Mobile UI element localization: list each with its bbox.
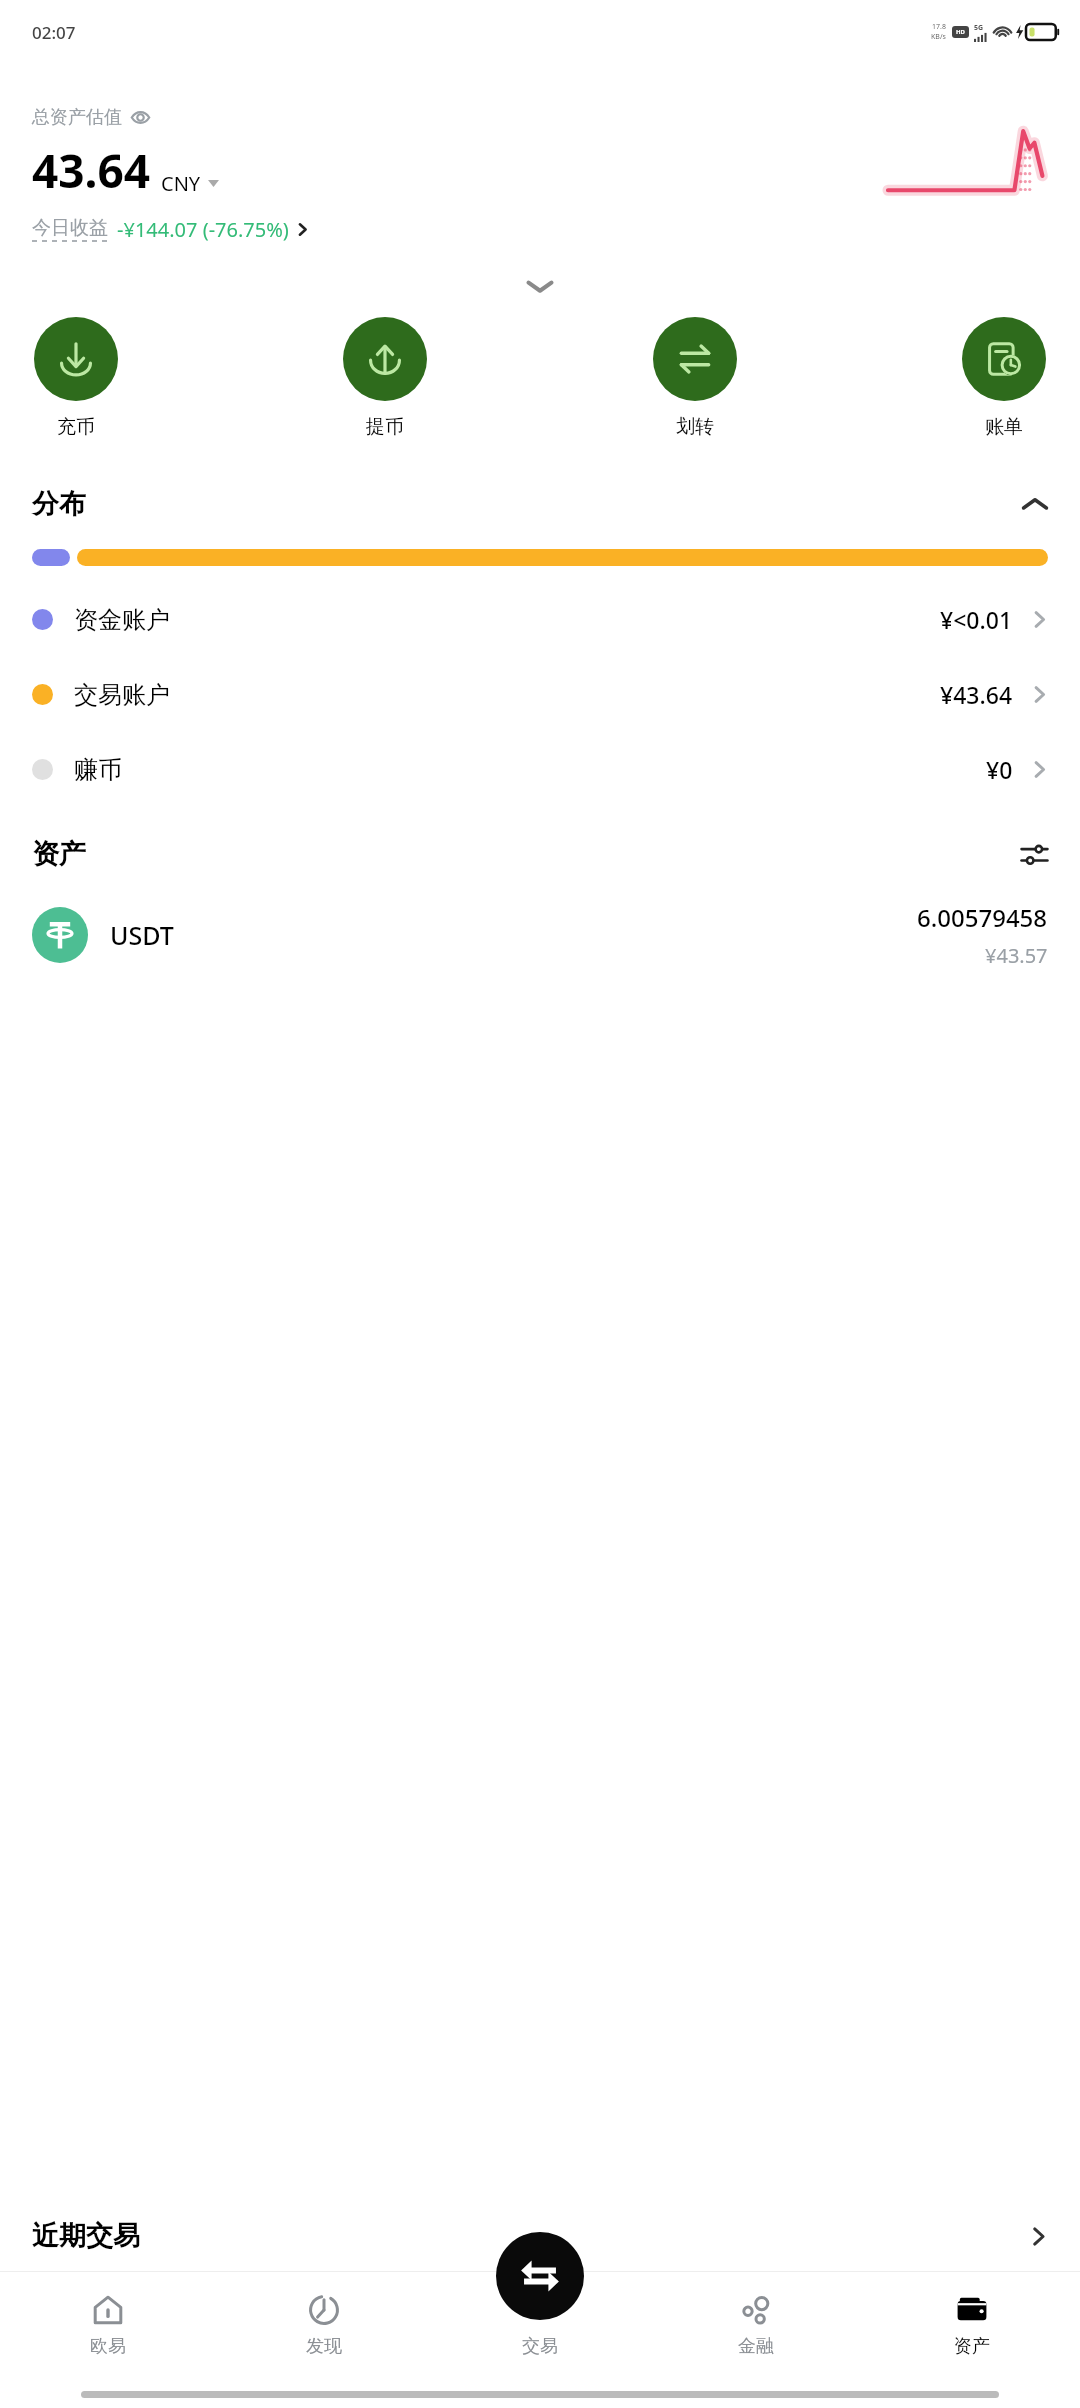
staticText: 交易账户 bbox=[74, 680, 170, 710]
staticText: ¥0 bbox=[986, 754, 1013, 785]
button[interactable]: Trade bbox=[496, 2232, 584, 2320]
button[interactable]: 金融 bbox=[648, 2272, 864, 2380]
staticText: 5G bbox=[974, 23, 984, 33]
staticText: 总资产估值 bbox=[32, 106, 122, 129]
staticText: 资金账户 bbox=[74, 605, 170, 635]
staticText: 金融 bbox=[738, 2335, 774, 2358]
staticText: 划转 bbox=[676, 415, 714, 439]
staticText: 账单 bbox=[985, 415, 1023, 439]
staticText: ¥<0.01 bbox=[940, 604, 1013, 635]
staticText: 17.8 bbox=[932, 22, 946, 32]
button[interactable]: 提币 bbox=[335, 317, 435, 439]
button[interactable]: 充币 bbox=[26, 317, 126, 439]
button[interactable]: 总资产估值 bbox=[32, 106, 150, 129]
other: Hide balance bbox=[131, 108, 150, 127]
button[interactable]: CNY bbox=[161, 170, 219, 197]
staticText: 02:07 bbox=[32, 21, 76, 44]
staticText: CNY bbox=[161, 170, 201, 197]
button[interactable]: 欧易 bbox=[0, 2272, 216, 2380]
staticText: 提币 bbox=[366, 415, 404, 439]
button[interactable]: 交易账户 bbox=[0, 657, 1080, 732]
staticText: KB/s bbox=[931, 32, 946, 42]
staticText: 今日收益 bbox=[32, 216, 108, 240]
staticText: USDT bbox=[110, 918, 174, 952]
staticText: 资产 bbox=[954, 2335, 990, 2358]
button[interactable]: 近期交易 bbox=[0, 2211, 1080, 2261]
staticText: 43.64 bbox=[32, 139, 151, 202]
button[interactable]: 今日收益 bbox=[32, 216, 309, 243]
button[interactable]: 分布 bbox=[0, 483, 1080, 525]
staticText: 资产 bbox=[32, 837, 86, 871]
button[interactable]: 资金账户 bbox=[0, 582, 1080, 657]
staticText: HD bbox=[956, 28, 965, 36]
button[interactable]: 账单 bbox=[954, 317, 1054, 439]
other: Filter assets bbox=[1021, 841, 1048, 868]
other: Collapse bbox=[527, 280, 553, 293]
staticText: ¥43.64 bbox=[940, 679, 1013, 710]
button[interactable]: Collapse bbox=[0, 269, 1080, 303]
other: Collapse section bbox=[1022, 497, 1048, 511]
staticText: 近期交易 bbox=[32, 2219, 140, 2253]
staticText: 交易 bbox=[522, 2335, 558, 2358]
staticText: 6.00579458 bbox=[917, 901, 1048, 934]
button[interactable]: USDT bbox=[0, 885, 1080, 985]
staticText: -¥144.07 (-76.75%) bbox=[117, 216, 289, 243]
button[interactable]: 发现 bbox=[216, 2272, 432, 2380]
staticText: 欧易 bbox=[90, 2335, 126, 2358]
staticText: 赚币 bbox=[74, 755, 122, 785]
staticText: 分布 bbox=[32, 487, 86, 521]
button[interactable]: 资产 bbox=[0, 831, 1080, 877]
button[interactable]: 划转 bbox=[645, 317, 745, 439]
staticText: 充币 bbox=[57, 415, 95, 439]
staticText: 发现 bbox=[306, 2335, 342, 2358]
button[interactable]: 资产 bbox=[864, 2272, 1080, 2380]
button[interactable]: 交易 bbox=[432, 2272, 648, 2380]
staticText: ¥43.57 bbox=[985, 942, 1048, 969]
button[interactable]: 赚币 bbox=[0, 732, 1080, 807]
